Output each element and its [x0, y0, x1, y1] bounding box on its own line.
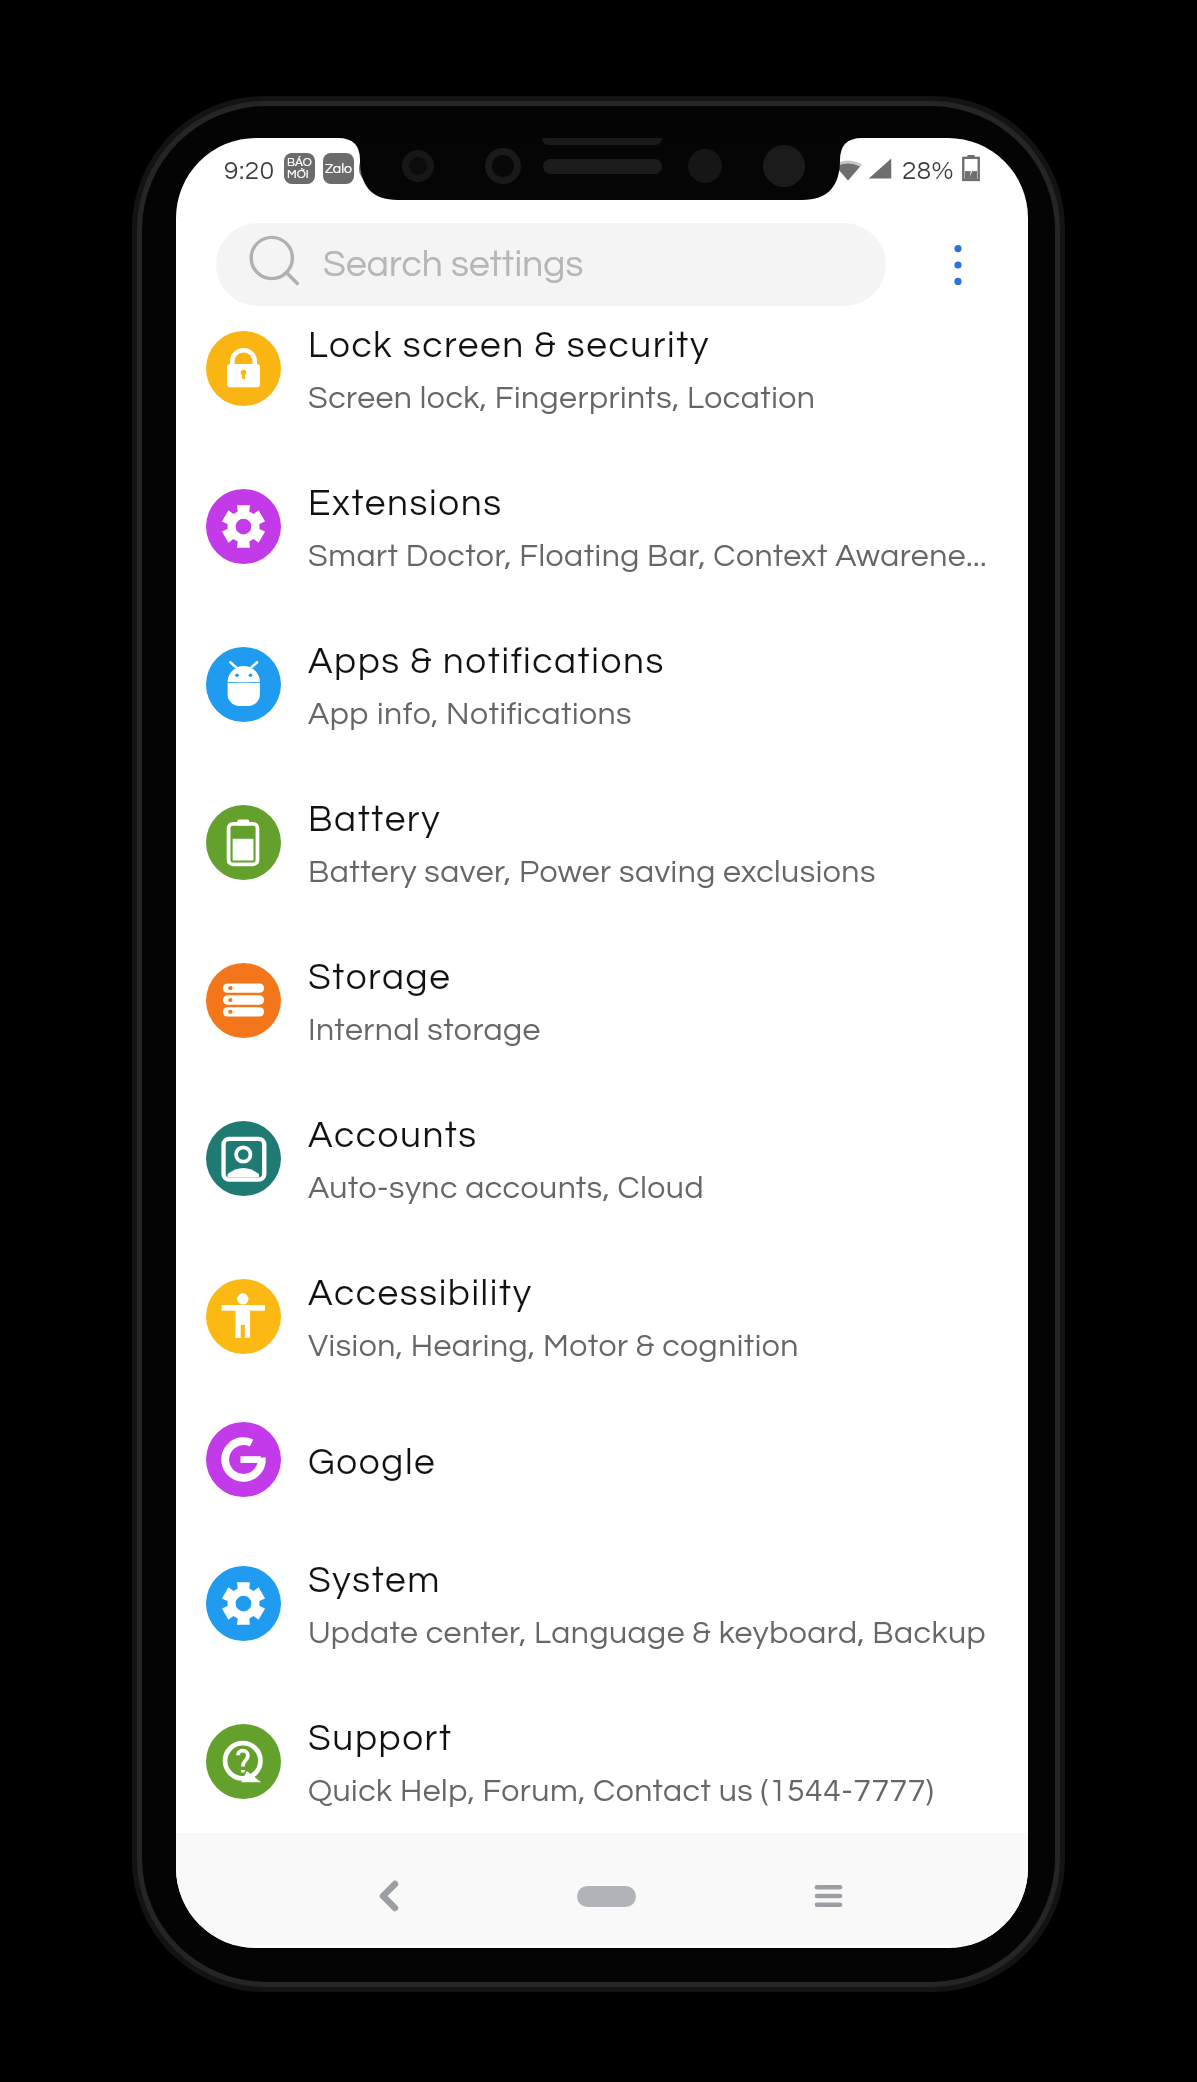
staticText: Storage — [308, 959, 452, 997]
button[interactable]: Home — [546, 1840, 666, 1948]
staticText: Google — [308, 1444, 437, 1482]
button[interactable]: Storage — [176, 921, 1028, 1079]
button[interactable]: System — [176, 1524, 1028, 1682]
staticText: Smart Doctor, Floating Bar, Context Awar… — [308, 540, 988, 573]
staticText: Lock screen & security — [308, 327, 710, 365]
staticText: Internal storage — [308, 1014, 541, 1047]
button[interactable]: Search settings — [216, 223, 886, 306]
staticText: BÁO MỚI — [287, 156, 312, 181]
staticText: Zalo — [325, 162, 352, 176]
button[interactable]: Support — [176, 1682, 1028, 1840]
button[interactable]: Lock screen & security — [176, 289, 1028, 447]
staticText: Battery saver, Power saving exclusions — [308, 856, 876, 889]
button[interactable]: More options — [912, 223, 1004, 306]
staticText: Apps & notifications — [308, 643, 665, 681]
button[interactable]: Back — [329, 1840, 449, 1948]
staticText: Extensions — [308, 485, 503, 523]
staticText: 9:20 — [224, 158, 275, 185]
button[interactable]: Accounts — [176, 1079, 1028, 1237]
staticText: Accounts — [308, 1117, 478, 1155]
staticText: App info, Notifications — [308, 698, 633, 731]
staticText: Update center, Language & keyboard, Back… — [308, 1617, 987, 1650]
button[interactable]: Battery — [176, 763, 1028, 921]
staticText: Vision, Hearing, Motor & cognition — [308, 1330, 799, 1363]
button[interactable]: Accessibility — [176, 1237, 1028, 1395]
staticText: Search settings — [323, 246, 584, 284]
staticText: Accessibility — [308, 1275, 533, 1313]
staticText: 28% — [902, 158, 954, 185]
button[interactable]: Apps & notifications — [176, 605, 1028, 763]
staticText: Screen lock, Fingerprints, Location — [308, 382, 816, 415]
button[interactable]: Recents — [768, 1840, 888, 1948]
staticText: Support — [308, 1720, 453, 1758]
staticText: Battery — [308, 801, 442, 839]
staticText: System — [308, 1562, 441, 1600]
staticText: Auto-sync accounts, Cloud — [308, 1172, 704, 1205]
staticText: Quick Help, Forum, Contact us (1544-7777… — [308, 1775, 935, 1808]
button[interactable]: Google — [176, 1395, 1028, 1524]
button[interactable]: Extensions — [176, 447, 1028, 605]
